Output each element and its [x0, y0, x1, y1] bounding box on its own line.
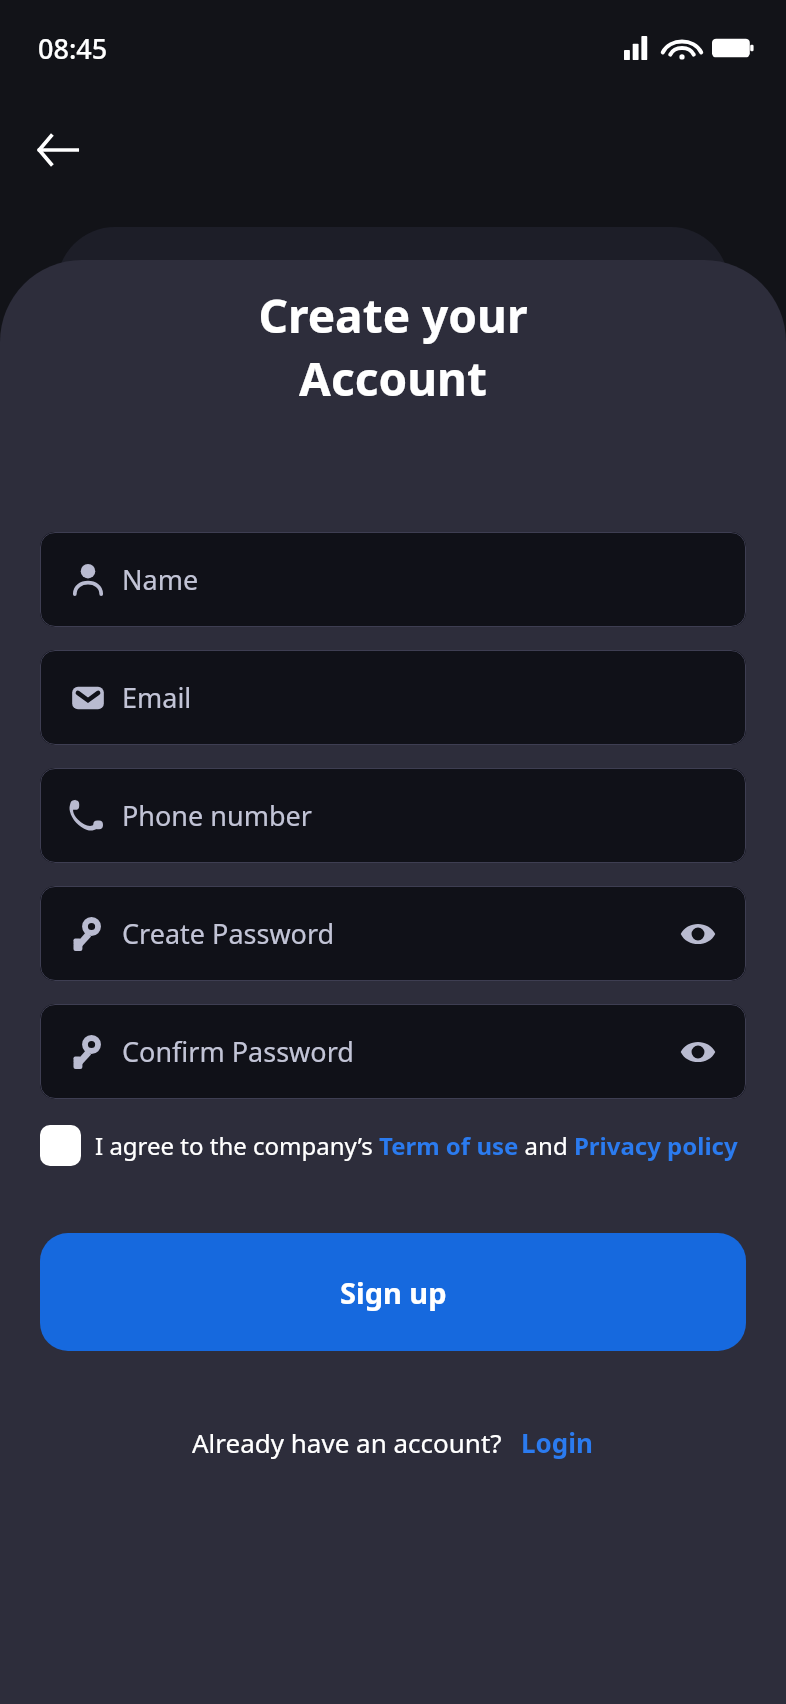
button[interactable]: Phone number — [40, 768, 746, 863]
staticText: I agree to the company’s Term of use and… — [95, 1129, 738, 1162]
staticText: Confirm Password — [122, 1033, 666, 1070]
button[interactable]: Create Password — [40, 886, 746, 981]
staticText: Sign up — [340, 1273, 447, 1312]
staticText: Email — [122, 679, 720, 716]
button[interactable]: Show password — [666, 902, 730, 966]
button[interactable]: Email — [40, 650, 746, 745]
staticText: Login — [521, 1425, 593, 1460]
staticText: 08:45 — [38, 30, 108, 67]
staticText: Create your Account — [0, 284, 786, 409]
button[interactable]: Name — [40, 532, 746, 627]
staticText: Phone number — [122, 797, 720, 834]
staticText: Name — [122, 561, 720, 598]
button[interactable]: Login — [519, 1421, 595, 1464]
button[interactable]: Sign up — [40, 1233, 746, 1351]
staticText: Already have an account? — [192, 1425, 502, 1460]
staticText: Create Password — [122, 915, 666, 952]
button[interactable]: Show password — [666, 1020, 730, 1084]
button[interactable]: Agree to terms checkbox — [40, 1125, 81, 1166]
button[interactable]: Confirm Password — [40, 1004, 746, 1099]
button[interactable]: Back — [24, 116, 92, 184]
